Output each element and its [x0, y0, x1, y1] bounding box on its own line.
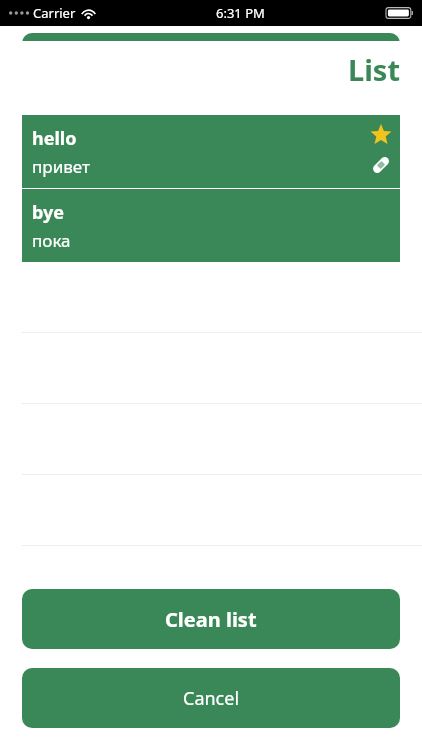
staticText: bye	[32, 200, 65, 225]
staticText: 6:31 PM	[216, 4, 265, 22]
staticText: Cancel	[183, 686, 240, 711]
staticText: hello	[32, 126, 77, 151]
staticText: пока	[32, 229, 71, 252]
staticText: привет	[32, 155, 90, 178]
button[interactable]: bye	[22, 189, 400, 262]
staticText: Carrier	[33, 4, 76, 22]
staticText: Clean list	[165, 606, 257, 633]
button[interactable]: Cancel	[22, 668, 400, 728]
button[interactable]: Clean list	[22, 589, 400, 649]
button[interactable]: Erase	[371, 155, 391, 175]
staticText: List	[347, 50, 400, 89]
button[interactable]: Favorite	[370, 124, 392, 146]
button[interactable]: hello	[22, 115, 400, 188]
